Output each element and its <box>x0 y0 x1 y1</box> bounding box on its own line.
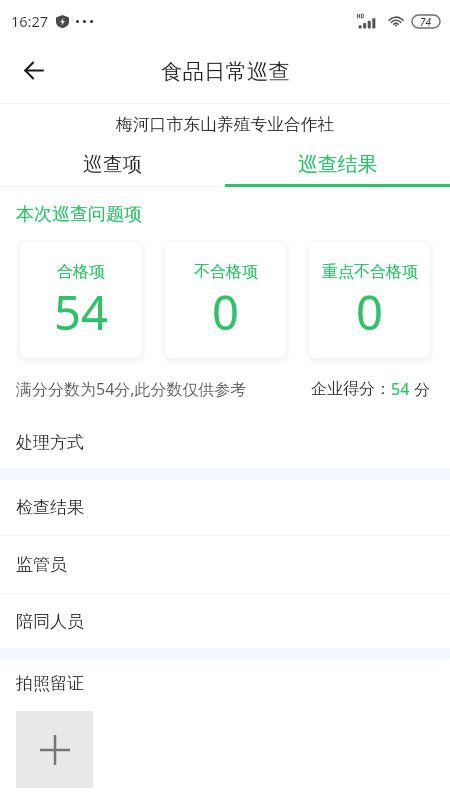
staticText: 陪同人员 <box>16 611 84 632</box>
staticText: 满分分数为54分,此分数仅供参考 <box>16 378 247 400</box>
staticText: 本次巡查问题项 <box>16 203 142 226</box>
button[interactable]: Back <box>9 48 57 96</box>
staticText: 74 <box>420 15 432 28</box>
button[interactable]: 巡查结果 <box>225 145 450 184</box>
staticText: 巡查结果 <box>298 152 378 177</box>
button[interactable]: 处理方式 <box>0 416 450 468</box>
button[interactable]: 合格项 <box>20 242 142 358</box>
button[interactable]: 不合格项 <box>165 242 286 358</box>
staticText: 重点不合格项 <box>322 262 418 282</box>
staticText: 54 <box>54 280 108 344</box>
button[interactable]: 监管员 <box>0 536 450 594</box>
staticText: 拍照留证 <box>16 673 84 694</box>
button[interactable]: 重点不合格项 <box>309 242 430 358</box>
staticText: 巡查项 <box>83 152 143 177</box>
staticText: 16:27 <box>11 11 49 31</box>
staticText: 54 <box>391 378 410 400</box>
staticText: 合格项 <box>57 262 105 282</box>
staticText: 0 <box>212 280 239 344</box>
staticText: 企业得分： <box>311 379 391 399</box>
staticText: 分 <box>410 378 431 400</box>
staticText: 不合格项 <box>194 262 258 282</box>
staticText: 处理方式 <box>16 432 84 453</box>
staticText: 梅河口市东山养殖专业合作社 <box>116 114 335 135</box>
button[interactable]: 检查结果 <box>0 480 450 536</box>
button[interactable]: 巡查项 <box>0 145 225 184</box>
button[interactable]: Add photo <box>16 711 93 788</box>
staticText: 0 <box>356 280 383 344</box>
staticText: 监管员 <box>16 554 67 575</box>
staticText: 检查结果 <box>16 497 84 518</box>
staticText: 食品日常巡查 <box>161 58 290 85</box>
button[interactable]: 陪同人员 <box>0 594 450 648</box>
